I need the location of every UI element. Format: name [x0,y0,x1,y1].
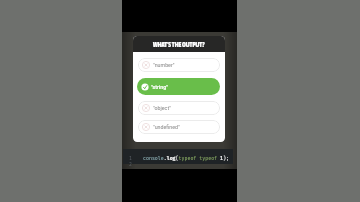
staticText: WHAT'S THE OUTPUT? [153,41,205,48]
staticText: 2 [129,161,132,167]
staticText: "object" [153,105,171,111]
staticText: "number" [153,62,175,68]
button[interactable]: "object" [138,101,220,115]
button[interactable]: "string" [137,78,220,95]
staticText: console.log(typeof typeof 1); [143,155,229,161]
staticText: "string" [151,84,168,90]
staticText: 1 [129,155,132,161]
staticText: "undefined" [153,124,180,130]
button[interactable]: "number" [138,58,220,72]
button[interactable]: "undefined" [138,120,220,134]
